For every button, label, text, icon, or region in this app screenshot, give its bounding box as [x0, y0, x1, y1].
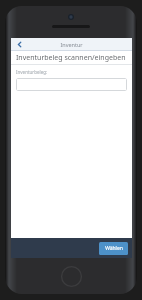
button[interactable]: Wählen [99, 242, 128, 255]
button[interactable]: Zurück [11, 38, 28, 51]
staticText: Wählen [105, 245, 123, 252]
staticText: Inventurbeleg: [16, 69, 48, 75]
staticText: Inventurbeleg scannen/eingeben [16, 53, 126, 63]
button[interactable] [16, 78, 127, 91]
staticText: Inventur [60, 41, 83, 48]
